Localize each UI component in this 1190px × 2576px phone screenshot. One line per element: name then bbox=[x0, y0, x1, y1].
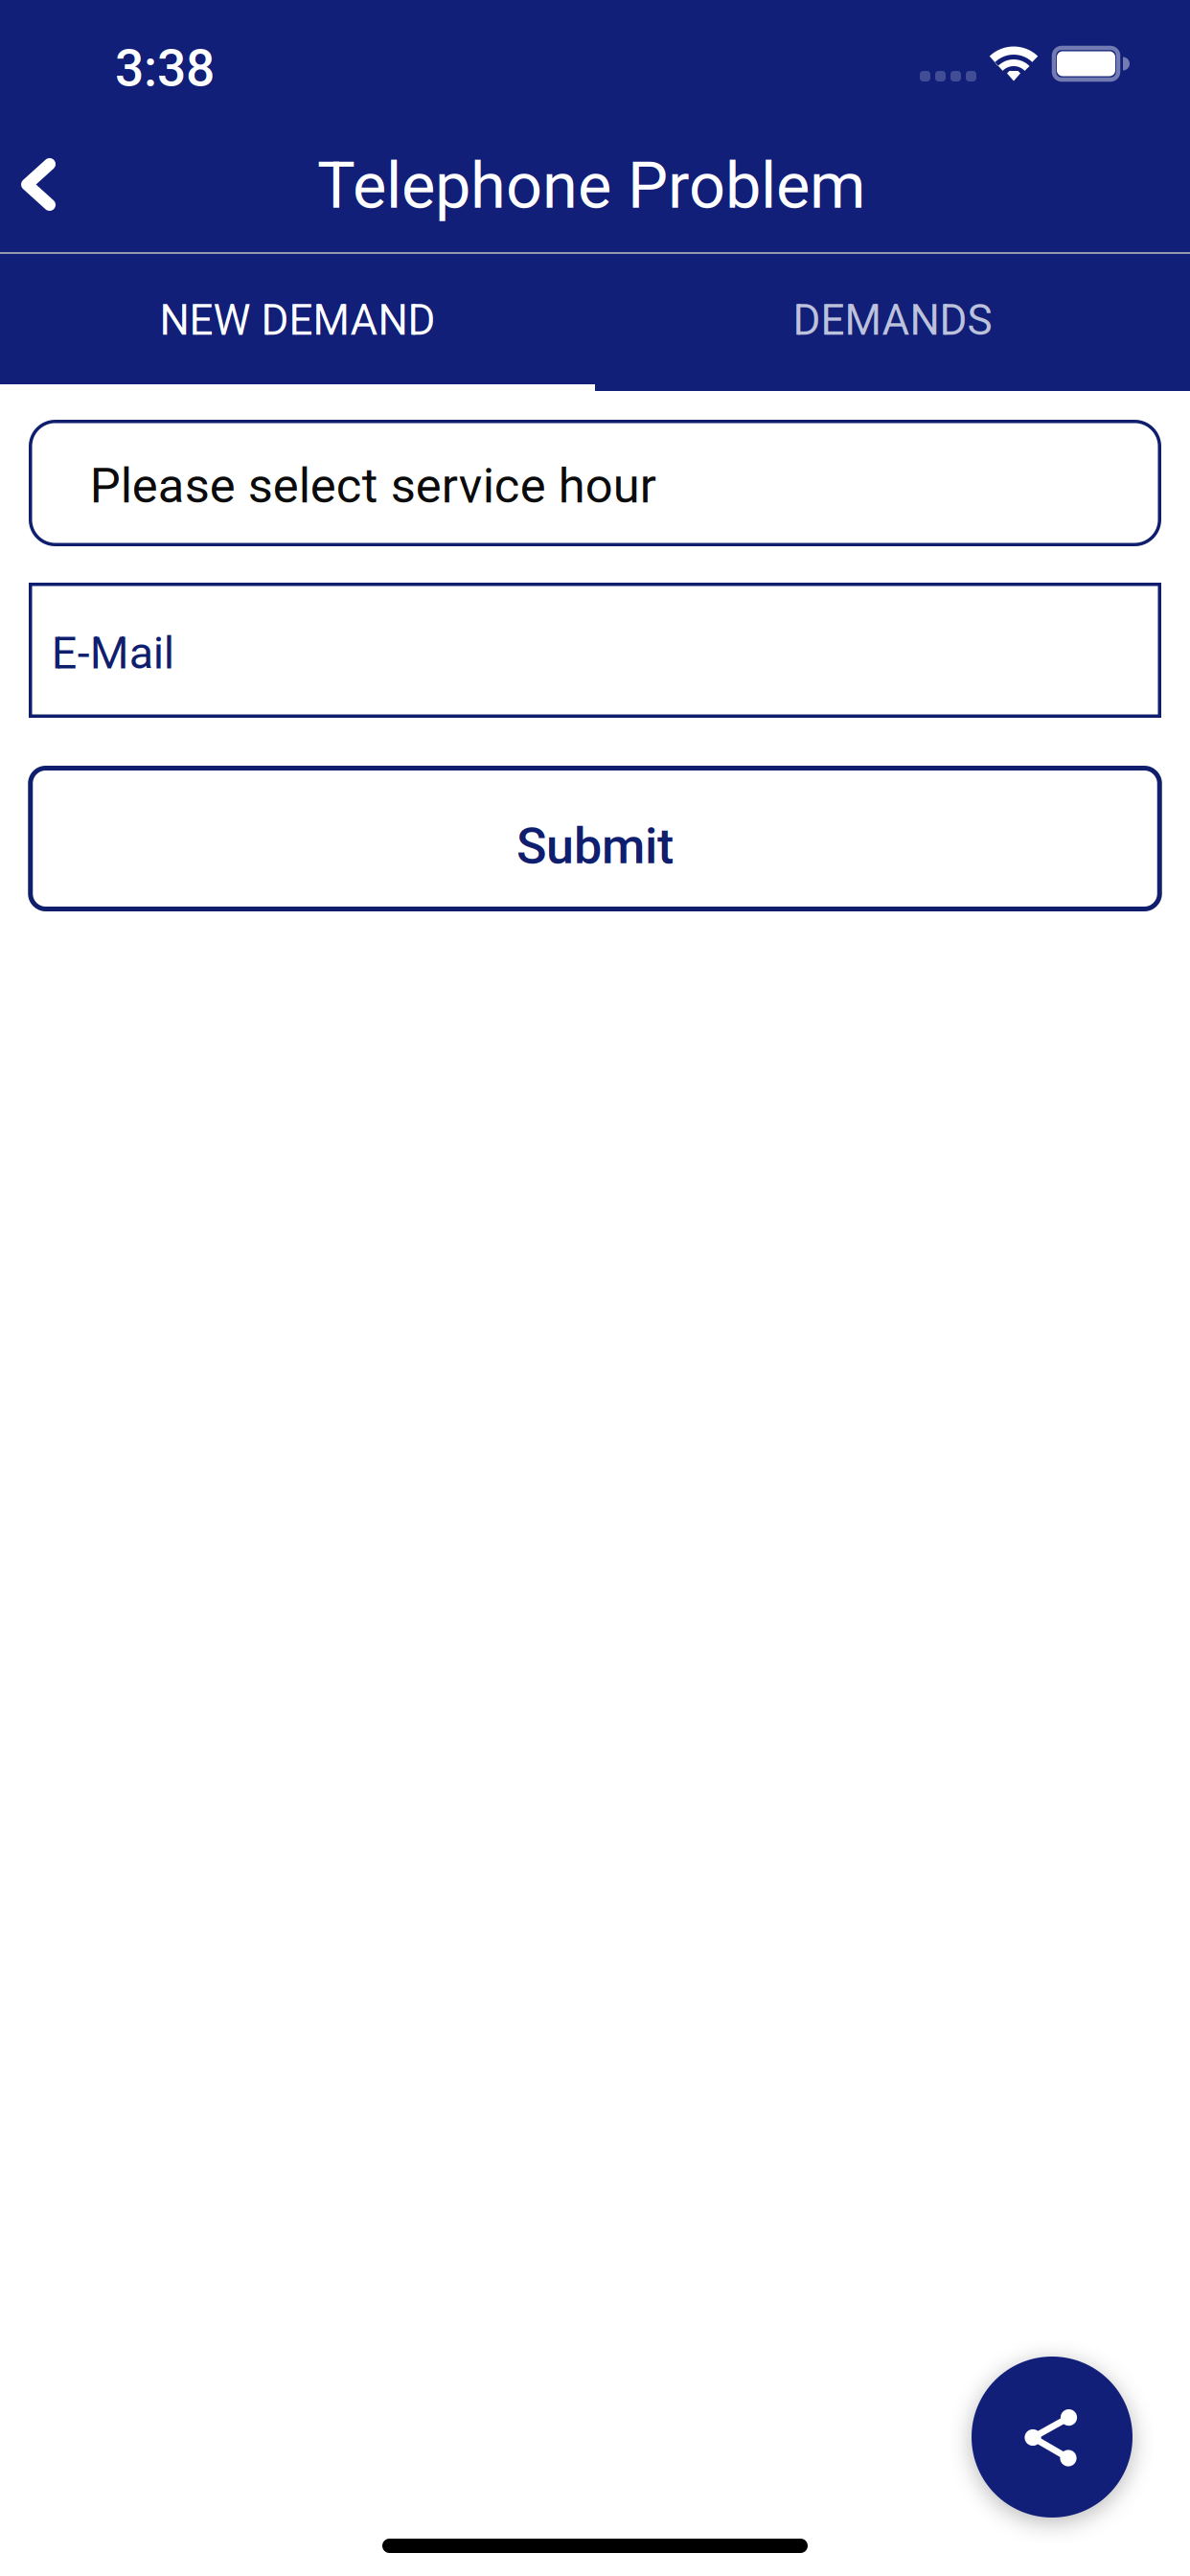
button[interactable]: Submit bbox=[30, 768, 1160, 909]
staticText: 3:38 bbox=[115, 38, 215, 98]
button[interactable]: Please select service hour bbox=[30, 421, 1160, 545]
button[interactable]: NEW DEMAND bbox=[0, 254, 595, 391]
staticText: Submit bbox=[516, 817, 674, 875]
button[interactable]: DEMANDS bbox=[595, 254, 1190, 391]
staticText: Please select service hour bbox=[90, 457, 656, 514]
staticText: NEW DEMAND bbox=[160, 296, 435, 345]
staticText: DEMANDS bbox=[793, 296, 992, 345]
staticText: Telephone Problem bbox=[317, 149, 865, 223]
button[interactable]: Back bbox=[0, 126, 77, 252]
button[interactable]: Share bbox=[972, 2357, 1133, 2518]
staticText: E-Mail bbox=[52, 627, 174, 679]
